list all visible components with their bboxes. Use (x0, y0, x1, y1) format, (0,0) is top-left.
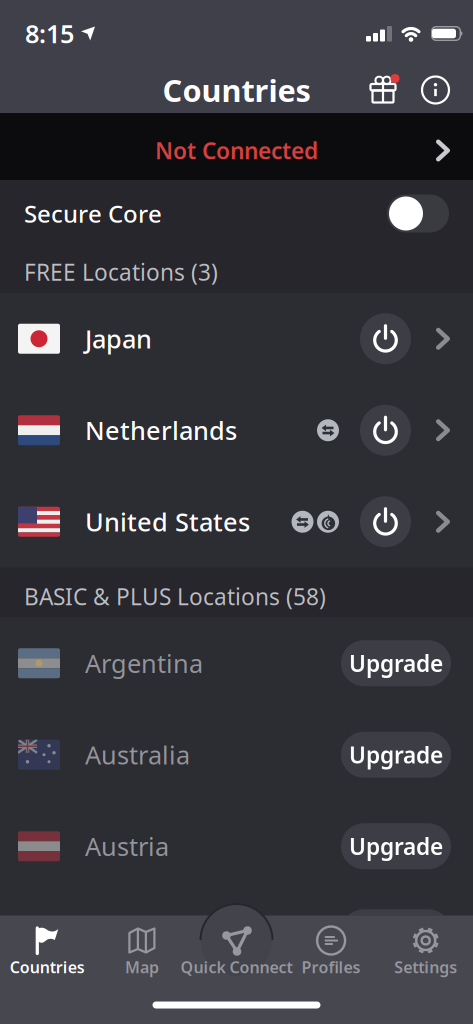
staticText: Secure Core (24, 198, 162, 229)
staticText: Austria (85, 829, 169, 863)
button[interactable]: Australia (0, 709, 473, 800)
button[interactable]: Map (95, 924, 189, 978)
button[interactable]: Information (422, 76, 449, 103)
staticText: Countries (10, 956, 85, 978)
button[interactable]: Japan (0, 293, 473, 384)
button[interactable]: Connect (360, 313, 411, 364)
button[interactable]: Countries (0, 924, 95, 978)
button[interactable]: United States (0, 476, 473, 567)
button[interactable]: Profiles (284, 924, 378, 978)
button[interactable]: Austria (0, 800, 473, 892)
button[interactable]: Upgrade (341, 823, 451, 869)
staticText: Netherlands (85, 413, 237, 447)
button[interactable]: Quick Connect (189, 924, 284, 978)
button[interactable]: Offers (371, 76, 397, 104)
staticText: Argentina (85, 646, 203, 680)
staticText: Australia (85, 738, 190, 771)
button[interactable]: Secure Core toggle (387, 194, 449, 232)
staticText: FREE Locations (3) (24, 257, 218, 287)
staticText: Japan (85, 322, 152, 355)
button[interactable]: Settings (378, 924, 473, 978)
button[interactable]: Netherlands (0, 384, 473, 476)
button[interactable]: Not Connected (0, 113, 473, 180)
staticText: 8:15 (25, 17, 74, 50)
staticText: BASIC & PLUS Locations (58) (24, 581, 326, 611)
button[interactable]: Connect (360, 405, 411, 456)
staticText: Upgrade (349, 648, 443, 678)
button[interactable]: Upgrade (341, 640, 451, 686)
button[interactable]: Upgrade (341, 732, 451, 778)
staticText: Profiles (302, 956, 361, 978)
staticText: Upgrade (349, 831, 443, 861)
staticText: United States (85, 505, 250, 538)
staticText: Settings (394, 956, 457, 978)
staticText: Upgrade (349, 740, 443, 770)
button[interactable]: Connect (360, 496, 411, 547)
button[interactable]: Secure Core (0, 180, 473, 247)
staticText: Countries (162, 70, 310, 110)
staticText: Map (125, 956, 159, 978)
button[interactable]: Argentina (0, 617, 473, 709)
staticText: Quick Connect (180, 956, 292, 978)
staticText: Not Connected (155, 135, 318, 165)
